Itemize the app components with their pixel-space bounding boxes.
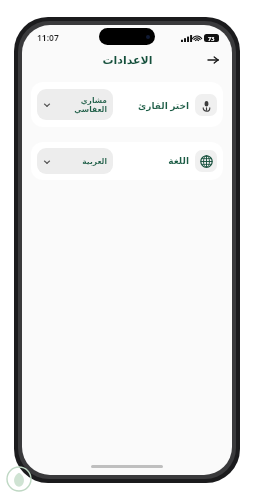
button[interactable]: مشاري العفاسي bbox=[37, 89, 113, 120]
button[interactable]: مشاري العفاسي bbox=[31, 82, 223, 127]
staticText: 73 bbox=[208, 35, 215, 42]
staticText: اللغة bbox=[168, 156, 189, 166]
staticText: العربية bbox=[82, 157, 107, 166]
button[interactable]: Forward bbox=[203, 50, 223, 70]
staticText: الاعدادات bbox=[102, 54, 153, 67]
button[interactable]: Language bbox=[195, 150, 217, 172]
staticText: 11:07 bbox=[37, 32, 59, 44]
staticText: مشاري العفاسي bbox=[74, 96, 107, 114]
staticText: اختر القارئ bbox=[138, 99, 189, 111]
button[interactable]: Reciter bbox=[195, 94, 217, 116]
button[interactable]: العربية bbox=[37, 148, 113, 174]
button[interactable]: العربية bbox=[31, 142, 223, 180]
